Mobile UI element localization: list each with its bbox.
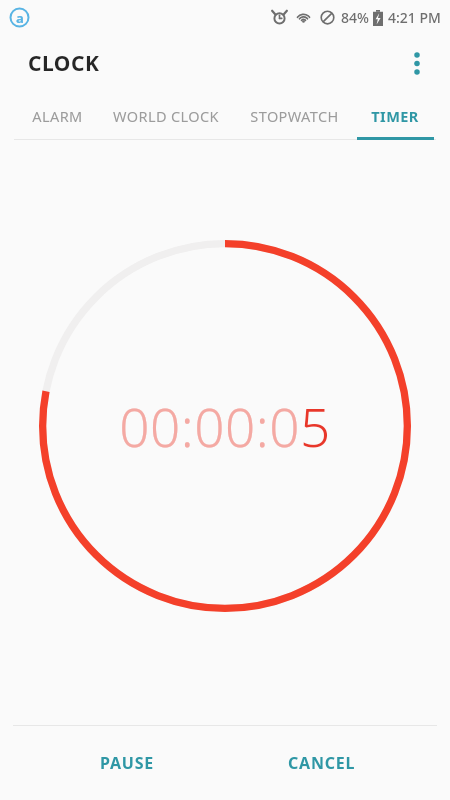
staticText: TIMER [371,106,419,126]
staticText: ALARM [32,106,83,126]
button[interactable]: WORLD CLOCK [106,92,226,140]
staticText: 4:21 PM [388,8,441,27]
button[interactable]: PAUSE [62,726,192,800]
staticText: 00:00:05 [119,390,331,462]
staticText: CLOCK [28,49,100,78]
button[interactable]: CANCEL [257,726,387,800]
button[interactable]: More options [400,46,434,80]
button[interactable]: TIMER [355,92,435,140]
staticText: STOPWATCH [250,106,339,126]
button[interactable]: ALARM [17,92,97,140]
staticText: PAUSE [100,752,155,774]
staticText: a [16,9,24,27]
staticText: 84% [341,8,369,27]
button[interactable]: STOPWATCH [236,92,352,140]
staticText: CANCEL [288,752,356,774]
staticText: WORLD CLOCK [113,106,219,126]
